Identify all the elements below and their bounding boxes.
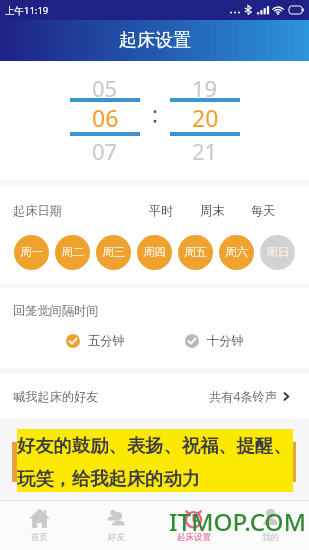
button[interactable]: 五分钟 bbox=[66, 333, 125, 348]
staticText: 每天 bbox=[251, 203, 276, 218]
staticText: 19 bbox=[192, 73, 218, 98]
staticText: 喊我起床的好友 bbox=[13, 389, 99, 404]
button[interactable]: 起床设置 bbox=[0, 20, 309, 61]
staticText: 好友 bbox=[108, 532, 125, 543]
staticText: 周一 bbox=[20, 245, 44, 260]
button[interactable]: 好友 bbox=[78, 501, 155, 550]
staticText: 起床设置 bbox=[119, 29, 191, 52]
button[interactable]: 我的 bbox=[232, 501, 309, 550]
staticText: 首页 bbox=[31, 532, 48, 543]
staticText: 起床设置 bbox=[177, 532, 211, 543]
button[interactable]: 平时 bbox=[136, 186, 187, 235]
button[interactable]: 周二 bbox=[55, 235, 90, 270]
button[interactable]: 起床设置 bbox=[155, 501, 232, 550]
staticText: 05 bbox=[92, 73, 118, 98]
staticText: 周末 bbox=[200, 203, 225, 218]
other: 起床设置 bbox=[183, 508, 204, 529]
button[interactable]: 好友的鼓励、表扬、祝福、提醒、 玩笑，给我起床的动力 bbox=[17, 429, 293, 492]
staticText: 周五 bbox=[184, 245, 208, 260]
staticText: 共有4条铃声 bbox=[209, 388, 277, 405]
staticText: 周四 bbox=[143, 245, 167, 260]
button[interactable]: 十分钟 bbox=[185, 333, 244, 348]
button[interactable]: 周三 bbox=[96, 235, 131, 270]
button[interactable]: 周四 bbox=[137, 235, 172, 270]
other: 好友 bbox=[106, 508, 127, 529]
staticText: 周三 bbox=[102, 245, 126, 260]
staticText: 十分钟 bbox=[207, 333, 244, 348]
staticText: 起床日期 bbox=[13, 203, 62, 218]
other: 我的 bbox=[260, 508, 281, 529]
button[interactable]: 06 bbox=[70, 102, 140, 132]
staticText: 06 bbox=[92, 102, 119, 132]
staticText: 周二 bbox=[61, 245, 85, 260]
staticText: 好友的鼓励、表扬、祝福、提醒、 玩笑，给我起床的动力 bbox=[17, 434, 292, 490]
staticText: 07 bbox=[92, 136, 118, 161]
button[interactable]: 周日 bbox=[260, 235, 295, 270]
staticText: 上午11:19 bbox=[5, 4, 49, 17]
staticText: 周日 bbox=[266, 245, 290, 260]
other: 首页 bbox=[29, 508, 50, 529]
staticText: 回笼觉间隔时间 bbox=[13, 303, 99, 318]
button[interactable]: 喊我起床的好友 bbox=[0, 373, 309, 419]
button[interactable]: 周末 bbox=[187, 186, 238, 235]
button[interactable]: 首页 bbox=[0, 501, 78, 550]
button[interactable]: 20 bbox=[170, 102, 240, 132]
button[interactable]: 周一 bbox=[14, 235, 49, 270]
button[interactable]: 周六 bbox=[219, 235, 254, 270]
staticText: 五分钟 bbox=[88, 333, 125, 348]
button[interactable]: 周五 bbox=[178, 235, 213, 270]
staticText: 20 bbox=[192, 102, 219, 132]
staticText: 周六 bbox=[225, 245, 249, 260]
staticText: 我的 bbox=[262, 532, 279, 543]
staticText: 21 bbox=[192, 136, 218, 161]
staticText: 平时 bbox=[149, 203, 174, 218]
button[interactable]: 每天 bbox=[238, 186, 289, 235]
staticText: ITMOP.COM bbox=[169, 505, 306, 538]
